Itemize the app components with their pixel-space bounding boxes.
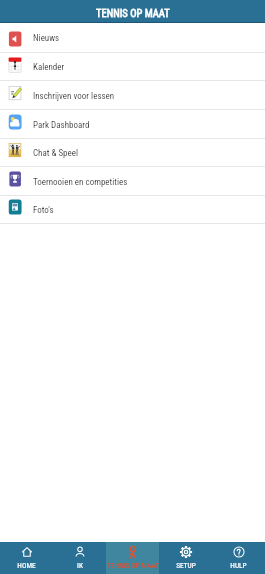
button[interactable]: Setup xyxy=(159,542,212,574)
button[interactable]: Kalender xyxy=(0,53,265,81)
staticText: SETUP xyxy=(176,561,196,570)
button[interactable]: Nieuws xyxy=(0,23,265,53)
staticText: TENNIS OP MAAT xyxy=(107,561,159,570)
staticText: HULP xyxy=(230,561,247,570)
button[interactable]: Ik xyxy=(53,542,106,574)
button[interactable]: Park Dashboard xyxy=(0,110,265,139)
staticText: Nieuws xyxy=(33,33,60,44)
staticText: Park Dashboard xyxy=(33,120,90,131)
staticText: Toernooien en competities xyxy=(33,177,128,188)
button[interactable]: Tennis op maat xyxy=(106,542,159,574)
button[interactable]: Toernooien en competities xyxy=(0,167,265,196)
button[interactable]: Chat & Speel xyxy=(0,139,265,167)
staticText: TENNIS OP MAAT xyxy=(96,7,170,19)
button[interactable]: Inschrijven voor lessen xyxy=(0,81,265,110)
button[interactable]: Hulp xyxy=(212,542,265,574)
staticText: Foto's xyxy=(33,205,54,216)
staticText: Kalender xyxy=(33,62,65,73)
button[interactable]: Home xyxy=(0,542,53,574)
staticText: Chat & Speel xyxy=(33,148,79,159)
button[interactable]: Foto's xyxy=(0,196,265,224)
staticText: IK xyxy=(77,561,83,570)
staticText: Inschrijven voor lessen xyxy=(33,91,115,102)
staticText: HOME xyxy=(17,561,36,570)
